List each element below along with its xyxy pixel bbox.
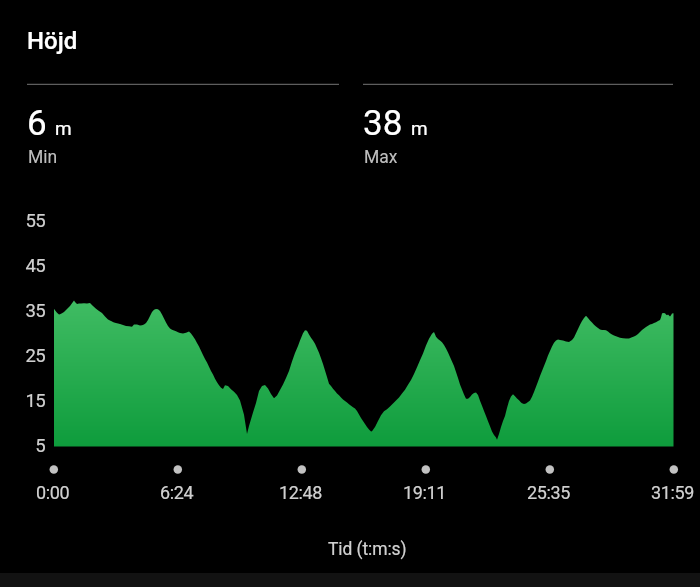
- staticText: 0:00: [36, 482, 70, 503]
- staticText: 38: [363, 103, 403, 144]
- staticText: 55: [25, 210, 45, 232]
- staticText: 31:59: [651, 482, 695, 503]
- staticText: Tid (t:m:s): [328, 539, 407, 560]
- staticText: 12:48: [279, 482, 323, 503]
- staticText: 25:35: [527, 482, 571, 503]
- staticText: m: [55, 117, 72, 139]
- staticText: 6:24: [160, 482, 194, 503]
- staticText: 45: [25, 255, 45, 277]
- staticText: Min: [28, 147, 58, 168]
- staticText: Höjd: [27, 27, 78, 55]
- staticText: 25: [25, 345, 45, 367]
- staticText: 35: [25, 300, 45, 322]
- staticText: 15: [25, 390, 45, 412]
- button[interactable]: 6: [27, 92, 327, 172]
- staticText: 6: [27, 103, 47, 144]
- button[interactable]: Elevation graph: [27, 200, 673, 460]
- staticText: Max: [364, 147, 398, 168]
- staticText: 5: [35, 435, 45, 457]
- staticText: m: [411, 117, 428, 139]
- staticText: 19:11: [403, 482, 447, 503]
- button[interactable]: 38: [363, 92, 663, 172]
